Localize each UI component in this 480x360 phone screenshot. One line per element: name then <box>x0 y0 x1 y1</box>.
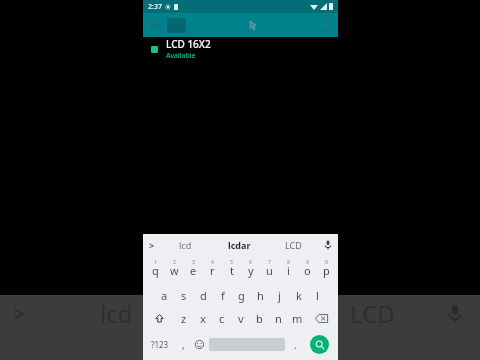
staticText: y <box>248 263 254 278</box>
button[interactable]: lcd <box>159 234 212 256</box>
button[interactable]: l <box>309 282 326 305</box>
button[interactable]: Clear <box>314 13 338 37</box>
staticText: 5 <box>230 259 233 266</box>
staticText: c <box>219 311 225 326</box>
staticText: 2:37 <box>148 2 162 12</box>
staticText: lcd <box>100 297 133 330</box>
staticText: > <box>14 300 26 327</box>
staticText: g <box>238 288 245 303</box>
staticText: 8 <box>287 259 290 266</box>
staticText: . <box>294 338 297 352</box>
staticText: n <box>275 311 282 326</box>
staticText: 1 <box>154 259 157 266</box>
button[interactable]: g <box>233 282 250 305</box>
button[interactable]: m <box>289 307 306 330</box>
button[interactable]: k <box>290 282 307 305</box>
button[interactable]: Back <box>143 13 167 37</box>
staticText: 0 <box>325 259 328 266</box>
button[interactable]: 4 <box>204 257 221 280</box>
staticText: f <box>221 288 225 303</box>
button[interactable]: n <box>270 307 287 330</box>
staticText: l <box>316 288 319 303</box>
staticText: o <box>304 263 311 278</box>
staticText: r <box>210 263 215 278</box>
staticText: m <box>292 311 303 326</box>
staticText: ?123 <box>151 339 169 350</box>
staticText: w <box>170 263 179 278</box>
staticText: 2 <box>173 259 176 266</box>
button[interactable]: c <box>213 307 230 330</box>
staticText: t <box>230 263 234 278</box>
staticText: 7 <box>268 259 271 266</box>
staticText: e <box>190 263 197 278</box>
button[interactable]: 1 <box>146 257 164 280</box>
button[interactable]: , <box>176 332 190 357</box>
button[interactable]: x <box>194 307 211 330</box>
staticText: s <box>181 288 187 303</box>
staticText: x <box>200 311 206 326</box>
button[interactable]: f <box>214 282 231 305</box>
button[interactable]: z <box>175 307 192 330</box>
staticText: a <box>161 288 168 303</box>
staticText: 4 <box>211 259 214 266</box>
button[interactable]: . <box>288 332 302 357</box>
staticText: > <box>149 239 155 251</box>
staticText: 9 <box>306 259 309 266</box>
button[interactable]: Backspace <box>308 307 335 330</box>
staticText: , <box>182 338 185 352</box>
staticText: k <box>296 288 302 303</box>
staticText: p <box>323 263 330 278</box>
staticText: d <box>200 288 207 303</box>
button[interactable]: s <box>175 282 193 305</box>
staticText: 6 <box>249 259 252 266</box>
button[interactable]: ?123 <box>146 332 174 357</box>
staticText: u <box>266 263 273 278</box>
button[interactable]: a <box>155 282 173 305</box>
button[interactable]: More suggestions <box>145 234 159 256</box>
button[interactable]: 0 <box>318 257 335 280</box>
button[interactable]: Emoji <box>192 332 206 357</box>
staticText: z <box>181 311 187 326</box>
staticText: h <box>257 288 264 303</box>
button[interactable]: b <box>251 307 268 330</box>
button[interactable]: 6 <box>242 257 259 280</box>
staticText: j <box>278 288 281 303</box>
staticText: lcd <box>179 239 192 251</box>
button[interactable]: 2 <box>166 257 183 280</box>
staticText: 3 <box>192 259 195 266</box>
staticText: LCD 16X2 <box>166 37 211 51</box>
staticText: i <box>287 263 290 278</box>
button[interactable]: 5 <box>223 257 240 280</box>
button[interactable]: LCD 16X2 <box>143 37 338 61</box>
button[interactable]: LCD <box>266 234 320 256</box>
staticText: q <box>152 263 159 278</box>
button[interactable]: 8 <box>280 257 297 280</box>
button[interactable]: 7 <box>261 257 278 280</box>
button[interactable]: lcdar <box>212 234 266 256</box>
button[interactable]: v <box>232 307 249 330</box>
button[interactable]: Voice input <box>320 234 336 256</box>
staticText: v <box>238 311 244 326</box>
button[interactable]: 3 <box>185 257 202 280</box>
staticText: Available <box>166 51 196 61</box>
button[interactable]: d <box>195 282 212 305</box>
staticText: LCD <box>350 297 395 330</box>
button[interactable]: Search <box>310 335 329 354</box>
button[interactable]: Shift <box>146 307 173 330</box>
staticText: b <box>256 311 263 326</box>
button[interactable]: 9 <box>299 257 316 280</box>
button[interactable]: j <box>271 282 288 305</box>
staticText: lcd <box>169 18 184 33</box>
staticText: lcdar <box>228 239 251 251</box>
button[interactable]: h <box>252 282 269 305</box>
staticText: LCD <box>285 239 302 251</box>
